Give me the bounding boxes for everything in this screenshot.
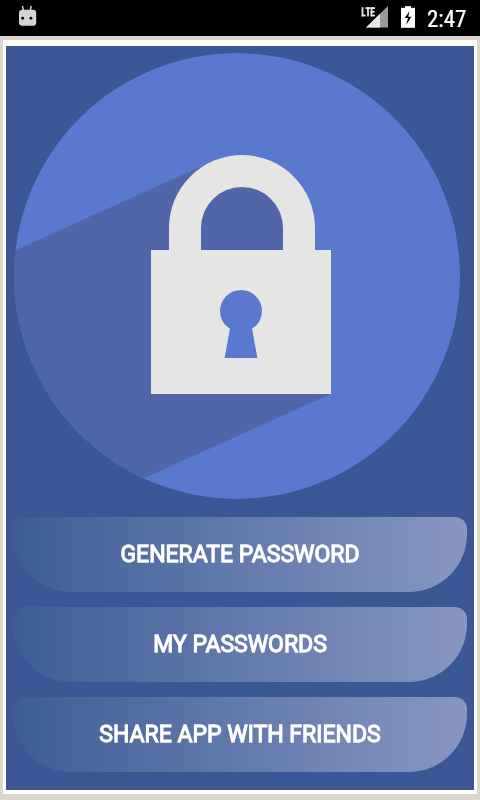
button[interactable]: GENERATE PASSWORD <box>13 517 467 592</box>
button[interactable]: MY PASSWORDS <box>13 607 467 682</box>
button[interactable]: SHARE APP WITH FRIENDS <box>13 697 467 772</box>
staticText: 2:47 <box>427 6 467 33</box>
staticText: MY PASSWORDS <box>153 631 327 658</box>
staticText: SHARE APP WITH FRIENDS <box>99 721 381 748</box>
staticText: GENERATE PASSWORD <box>120 541 360 568</box>
